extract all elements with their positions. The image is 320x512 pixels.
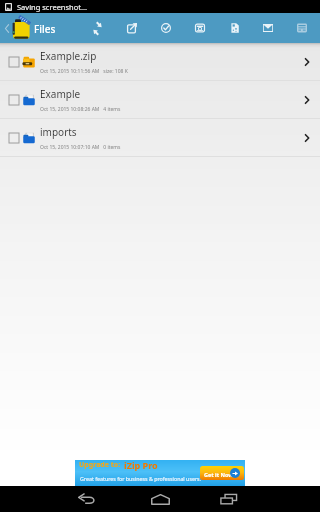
staticText: Oct 15, 2015 10:08:26 AM 4 items (40, 106, 121, 113)
button[interactable]: Documents (223, 16, 247, 40)
button[interactable]: Mail (256, 16, 280, 40)
staticText: Saving screenshot... (17, 2, 88, 12)
button[interactable]: Navigate up (1, 18, 12, 38)
staticText: Oct 15, 2015 10:07:10 AM 0 items (40, 144, 121, 151)
button[interactable]: iZip Files (11, 15, 59, 41)
staticText: Example.zip (40, 49, 97, 63)
button[interactable]: Back (68, 487, 104, 511)
button[interactable]: Select Example.zip (0, 43, 320, 81)
button[interactable]: Select Example (9, 95, 19, 105)
staticText: Upgrade to: (79, 460, 121, 470)
staticText: Get it Now! (204, 471, 235, 478)
button[interactable]: Get it Now! (200, 466, 244, 480)
staticText: Great features for business & profession… (80, 475, 202, 482)
button[interactable]: Media (188, 16, 212, 40)
button[interactable]: Select all (154, 16, 178, 40)
button[interactable]: Upgrade to: (75, 460, 245, 486)
button[interactable]: Select imports (0, 119, 320, 157)
staticText: Files (34, 22, 56, 36)
button[interactable]: Select Example (0, 81, 320, 119)
button[interactable]: Home (142, 487, 178, 511)
button[interactable]: Select Example.zip (9, 57, 19, 67)
button[interactable]: Compress (85, 16, 109, 40)
staticText: Example (40, 87, 81, 101)
button[interactable]: Recent apps (211, 487, 247, 511)
button[interactable]: More options (290, 16, 314, 40)
staticText: Oct 15, 2015 10:11:56 AM size: 108 K (40, 68, 128, 75)
button[interactable]: Select imports (9, 133, 19, 143)
staticText: imports (40, 125, 77, 139)
staticText: iZip Pro (124, 459, 158, 471)
button[interactable]: Extract (120, 16, 144, 40)
